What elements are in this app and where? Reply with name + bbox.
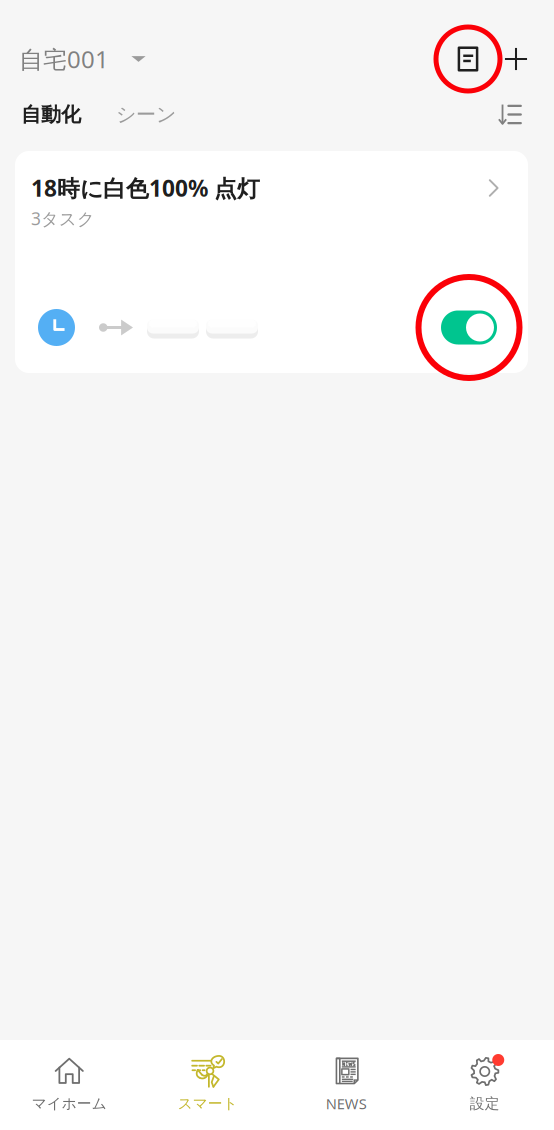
staticText: シーン bbox=[116, 102, 176, 127]
button[interactable]: 自宅001 bbox=[0, 33, 146, 85]
staticText: スマート bbox=[178, 1094, 238, 1112]
button[interactable]: 18時に白色100% 点灯 bbox=[15, 151, 528, 373]
staticText: 自宅001 bbox=[19, 43, 109, 75]
button[interactable]: 設定 bbox=[415, 1041, 554, 1128]
staticText: 設定 bbox=[470, 1094, 500, 1112]
staticText: マイホーム bbox=[32, 1094, 107, 1112]
button[interactable]: 追加 bbox=[494, 37, 538, 81]
button[interactable]: ログ bbox=[442, 33, 494, 85]
button[interactable]: 並び替え bbox=[488, 92, 532, 136]
button[interactable]: スマート bbox=[138, 1041, 277, 1128]
staticText: 3タスク bbox=[31, 207, 95, 230]
button[interactable]: 自動化 bbox=[0, 94, 81, 135]
staticText: NEWS bbox=[326, 1094, 367, 1113]
staticText: 自動化 bbox=[21, 102, 81, 127]
staticText: 18時に白色100% 点灯 bbox=[31, 173, 260, 203]
button[interactable]: マイホーム bbox=[0, 1041, 138, 1128]
button[interactable]: NEWS bbox=[277, 1041, 415, 1129]
button[interactable]: シーン bbox=[81, 94, 176, 135]
